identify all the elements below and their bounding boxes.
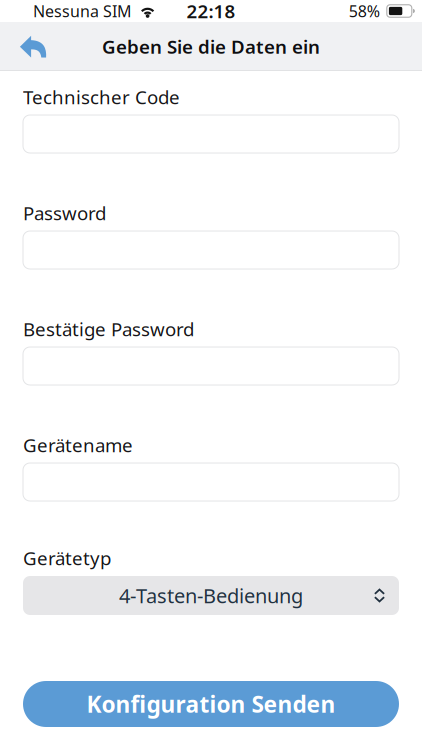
- button[interactable]: Back: [11, 24, 55, 68]
- staticText: Geben Sie die Daten ein: [102, 34, 320, 59]
- staticText: Password: [23, 201, 106, 225]
- button[interactable]: Text field: [23, 463, 399, 501]
- staticText: 58%: [349, 0, 380, 22]
- staticText: Gerätename: [23, 433, 133, 457]
- button[interactable]: Text field: [23, 115, 399, 153]
- button[interactable]: Konfiguration Senden: [23, 681, 399, 727]
- staticText: Bestätige Password: [23, 317, 194, 341]
- staticText: Nessuna SIM: [33, 0, 132, 22]
- staticText: 4-Tasten-Bedienung: [119, 582, 303, 609]
- button[interactable]: 4-Tasten-Bedienung: [23, 576, 399, 615]
- button[interactable]: Text field: [23, 231, 399, 269]
- staticText: 22:18: [186, 0, 235, 23]
- button[interactable]: Text field: [23, 347, 399, 385]
- staticText: Gerätetyp: [23, 546, 111, 570]
- staticText: Konfiguration Senden: [86, 689, 335, 719]
- staticText: Technischer Code: [23, 85, 180, 109]
